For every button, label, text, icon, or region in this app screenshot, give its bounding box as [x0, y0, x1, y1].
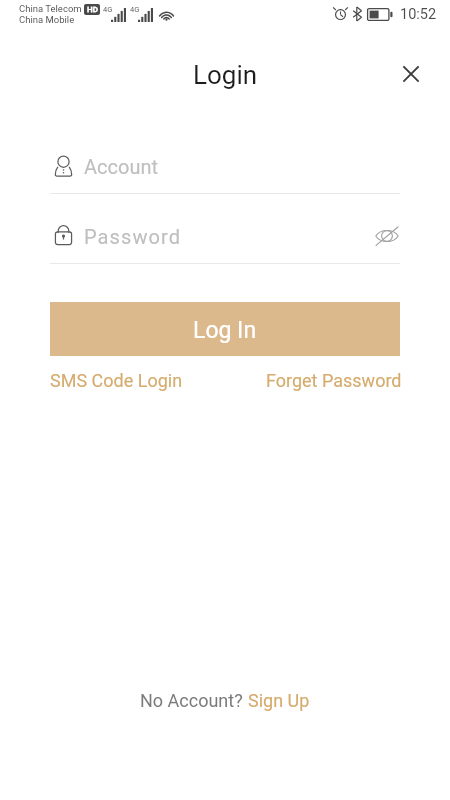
staticText: Account: [84, 155, 159, 178]
button[interactable]: SMS Code Login: [50, 362, 183, 399]
staticText: SMS Code Login: [50, 370, 183, 391]
staticText: HD: [87, 5, 98, 14]
button[interactable]: Account: [50, 145, 400, 187]
staticText: Password: [84, 225, 182, 248]
staticText: 4G: [130, 5, 140, 14]
staticText: 10:52: [400, 6, 437, 23]
staticText: Forget Password: [266, 370, 402, 391]
button[interactable]: Password: [50, 215, 400, 257]
staticText: China Mobile: [19, 14, 75, 25]
staticText: 4G: [103, 5, 113, 14]
staticText: China Telecom: [19, 3, 82, 14]
staticText: No Account?: [140, 690, 248, 711]
button[interactable]: Log In: [50, 302, 400, 356]
button[interactable]: Close: [391, 54, 431, 94]
staticText: Log In: [193, 317, 257, 344]
button[interactable]: Show password: [371, 220, 403, 252]
button[interactable]: Forget Password: [266, 362, 402, 399]
staticText: Login: [193, 60, 258, 90]
button[interactable]: Sign Up: [248, 682, 310, 719]
staticText: Sign Up: [248, 690, 310, 711]
